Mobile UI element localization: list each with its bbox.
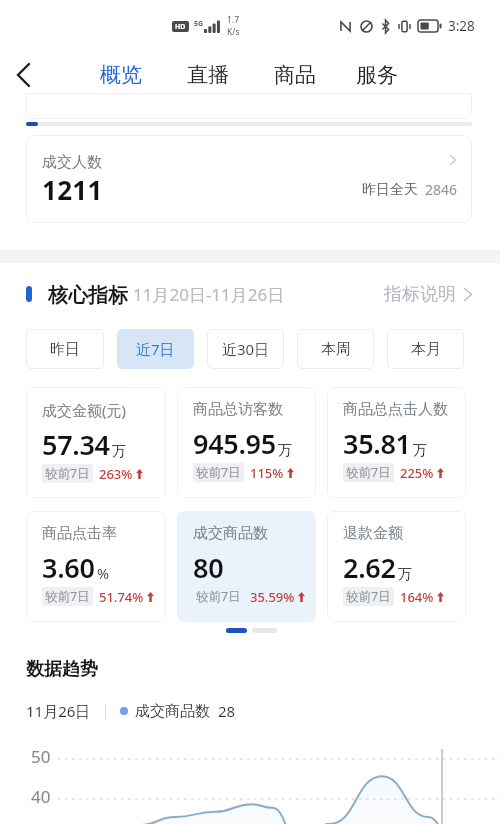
staticText: 昨日全天 [362,181,418,199]
staticText: 直播 [187,62,229,88]
button[interactable]: 昨日 [26,329,104,369]
staticText: 万 [398,565,413,583]
staticText: 80 [193,549,224,586]
staticText: 退款金额 [343,524,403,543]
button[interactable]: 本周 [297,329,374,369]
staticText: K/s [227,26,240,38]
staticText: 57.34 [42,426,110,463]
staticText: 2.62 [343,549,396,586]
staticText: 51.74% [99,588,144,606]
staticText: 2846 [425,180,458,199]
staticText: 较前7日 [196,588,241,605]
staticText: 较前7日 [346,588,391,605]
button[interactable]: 近7日 [117,329,194,369]
button[interactable]: 商品点击率 [26,511,166,622]
staticText: 万 [278,441,293,459]
button[interactable]: 概览 [100,62,142,99]
staticText: 28 [218,701,236,721]
staticText: 核心指标 [48,283,128,305]
staticText: 较前7日 [196,464,241,481]
staticText: 万 [112,442,127,460]
staticText: 商品点击率 [42,524,117,543]
staticText: 较前7日 [45,588,90,605]
staticText: 概览 [100,62,142,88]
staticText: 225% [400,464,434,482]
staticText: 3.60 [42,549,95,586]
staticText: 50 [31,745,51,768]
staticText: 35.81 [343,425,411,462]
staticText: 1211 [42,172,103,207]
staticText: 近7日 [136,339,175,359]
staticText: 万 [413,441,428,459]
staticText: 164% [400,588,434,606]
button[interactable]: Back [3,55,43,95]
button[interactable]: 服务 [356,62,398,95]
button[interactable]: 成交人数 [26,135,472,223]
button[interactable]: 成交金额(元) [26,387,166,498]
button[interactable]: 商品 [274,62,316,95]
staticText: 较前7日 [346,464,391,481]
staticText: 本周 [321,340,351,359]
button[interactable]: 成交商品数 [177,511,316,622]
staticText: 服务 [356,62,398,88]
staticText: 昨日 [50,340,80,359]
staticText: 35.59% [250,588,295,606]
staticText: 本月 [411,340,441,359]
button[interactable]: 指标说明 [384,283,472,305]
staticText: 1.7 [227,14,240,26]
button[interactable]: 近30日 [207,329,284,369]
staticText: 945.95 [193,425,276,462]
staticText: 40 [31,785,51,808]
staticText: 指标说明 [384,283,456,305]
staticText: 近30日 [222,339,270,359]
staticText: 数据趋势 [26,658,98,681]
button[interactable]: 退款金额 [327,511,466,622]
staticText: 成交商品数 [135,702,210,721]
staticText: 成交人数 [42,153,102,172]
staticText: 11月26日 [26,701,91,721]
button[interactable]: 商品总访客数 [177,387,316,498]
staticText: 商品总访客数 [193,400,283,419]
staticText: 263% [99,465,133,483]
staticText: 5G [194,19,204,29]
staticText: HD [175,22,186,32]
staticText: 成交金额(元) [42,400,127,420]
button[interactable]: 直播 [187,62,229,95]
staticText: 115% [250,464,284,482]
staticText: 商品 [274,62,316,88]
button[interactable]: 商品总点击人数 [327,387,466,498]
staticText: 商品总点击人数 [343,400,448,419]
staticText: 3:28 [448,17,475,35]
staticText: 11月20日-11月26日 [133,283,285,305]
staticText: 较前7日 [45,465,90,482]
button[interactable]: 本月 [387,329,464,369]
staticText: 成交商品数 [193,524,268,543]
staticText: % [97,563,110,583]
